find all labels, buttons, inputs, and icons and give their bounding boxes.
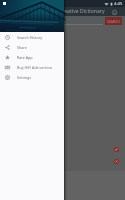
- button[interactable]: SEARCH: [105, 17, 122, 25]
- staticText: 4:45: [114, 1, 123, 7]
- button[interactable]: Settings: [0, 72, 64, 82]
- staticText: Share: [17, 45, 27, 50]
- button[interactable]: Speak: [114, 147, 119, 152]
- button[interactable]: Share: [0, 42, 64, 52]
- staticText: Search History: [17, 35, 43, 40]
- button[interactable]: Buy HiFi Ads version: [0, 62, 64, 72]
- button[interactable]: Mood: [110, 8, 118, 16]
- button[interactable]: Search History: [0, 32, 64, 42]
- staticText: SEARCH: [107, 19, 120, 24]
- staticText: Creative Dictionary: [59, 8, 105, 15]
- staticText: Settings: [17, 75, 32, 80]
- button[interactable]: Clear: [114, 159, 119, 164]
- staticText: Buy HiFi Ads version: [17, 65, 53, 70]
- staticText: Rate App: [17, 55, 33, 60]
- button[interactable]: Rate App: [0, 52, 64, 62]
